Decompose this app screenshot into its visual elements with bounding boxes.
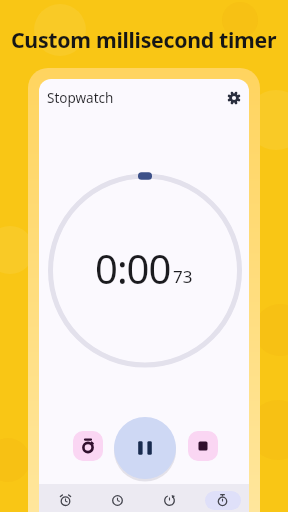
button[interactable] xyxy=(91,484,143,512)
staticText: 73 xyxy=(173,265,193,288)
button[interactable] xyxy=(73,431,103,461)
button[interactable] xyxy=(196,484,249,512)
button[interactable] xyxy=(114,417,176,479)
staticText: Stopwatch xyxy=(47,89,114,107)
staticText: 0:00 xyxy=(95,241,171,295)
staticText: Custom millisecond timer xyxy=(11,25,277,54)
button[interactable] xyxy=(143,484,196,512)
button[interactable] xyxy=(188,431,218,461)
button[interactable] xyxy=(39,484,91,512)
button[interactable] xyxy=(225,89,243,107)
